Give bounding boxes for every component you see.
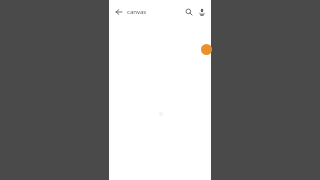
button[interactable]: Back	[112, 5, 125, 18]
button[interactable]: Notification badge	[201, 44, 212, 55]
button[interactable]: Voice search	[195, 5, 208, 18]
button[interactable]: canvas	[127, 4, 171, 19]
staticText: canvas	[127, 8, 147, 16]
button[interactable]: Search	[182, 5, 195, 18]
